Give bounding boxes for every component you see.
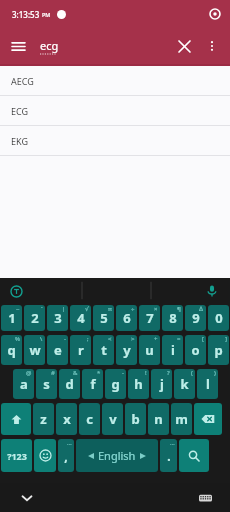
- button[interactable]: l: [197, 369, 218, 399]
- staticText: i: [171, 341, 175, 359]
- staticText: 1: [8, 309, 16, 327]
- staticText: u: [145, 341, 154, 359]
- button[interactable]: v: [102, 403, 123, 435]
- staticText: f: [90, 375, 96, 393]
- staticText: ECG: [11, 105, 29, 117]
- staticText: ÷: [131, 305, 135, 313]
- button[interactable]: j: [151, 369, 172, 399]
- staticText: ]: [225, 335, 227, 343]
- button[interactable]: [194, 403, 222, 435]
- staticText: -: [122, 369, 124, 377]
- button[interactable]: 1: [1, 305, 22, 331]
- staticText: 2: [31, 309, 39, 327]
- staticText: y: [123, 341, 131, 359]
- button[interactable]: a: [13, 369, 34, 399]
- staticText: r: [78, 341, 84, 359]
- staticText: =: [177, 335, 181, 343]
- button[interactable]: ,: [58, 439, 74, 472]
- button[interactable]: 6: [116, 305, 137, 331]
- button[interactable]: Switch keyboard: [194, 487, 216, 509]
- staticText: (: [191, 369, 193, 377]
- button[interactable]: Voice input: [202, 281, 222, 301]
- button[interactable]: x: [56, 403, 77, 435]
- staticText: ×: [154, 305, 158, 313]
- staticText: 9: [192, 309, 200, 327]
- staticText: ~: [16, 305, 20, 313]
- staticText: PM: [42, 11, 51, 18]
- staticText: p: [214, 341, 223, 359]
- staticText: 3:13:53: [12, 9, 40, 20]
- button[interactable]: Hide keyboard: [16, 487, 38, 509]
- button[interactable]: AECG: [0, 66, 230, 95]
- staticText: a: [20, 375, 28, 393]
- button[interactable]: 5: [93, 305, 114, 331]
- staticText: ): [214, 369, 216, 377]
- staticText: !: [145, 369, 147, 377]
- staticText: *: [97, 369, 101, 377]
- button[interactable]: b: [125, 403, 146, 435]
- staticText: #: [51, 369, 55, 377]
- staticText: ;: [87, 335, 89, 343]
- button[interactable]: u: [139, 335, 160, 365]
- staticText: 5: [100, 309, 108, 327]
- button[interactable]: 7: [139, 305, 160, 331]
- button[interactable]: Translate: [6, 281, 26, 301]
- button[interactable]: t: [93, 335, 114, 365]
- button[interactable]: s: [36, 369, 57, 399]
- staticText: n: [154, 410, 163, 428]
- staticText: j: [160, 375, 164, 393]
- button[interactable]: [179, 439, 209, 472]
- staticText: 7: [146, 309, 154, 327]
- button[interactable]: [1, 403, 31, 435]
- staticText: √: [85, 305, 89, 312]
- staticText: x: [63, 410, 71, 428]
- button[interactable]: 9: [185, 305, 206, 331]
- staticText: t: [101, 341, 107, 359]
- staticText: z: [40, 410, 47, 428]
- button[interactable]: y: [116, 335, 137, 365]
- button[interactable]: c: [79, 403, 100, 435]
- button[interactable]: n: [148, 403, 169, 435]
- button[interactable]: i: [162, 335, 183, 365]
- staticText: e: [54, 341, 62, 359]
- button[interactable]: r: [70, 335, 91, 365]
- staticText: h: [134, 375, 143, 393]
- button[interactable]: o: [185, 335, 206, 365]
- button[interactable]: m: [171, 403, 192, 435]
- button[interactable]: More options: [198, 32, 226, 60]
- button[interactable]: g: [105, 369, 126, 399]
- button[interactable]: Menu: [4, 32, 32, 60]
- button[interactable]: p: [208, 335, 229, 365]
- button[interactable]: 0: [208, 305, 229, 331]
- button[interactable]: .: [160, 439, 177, 472]
- button[interactable]: k: [174, 369, 195, 399]
- staticText: g: [111, 375, 120, 393]
- button[interactable]: [34, 439, 56, 472]
- staticText: π: [108, 305, 112, 313]
- button[interactable]: ECG: [0, 96, 230, 125]
- button[interactable]: z: [33, 403, 54, 435]
- staticText: %: [15, 335, 20, 343]
- staticText: …: [170, 439, 175, 447]
- button[interactable]: 4: [70, 305, 91, 331]
- button[interactable]: EKG: [0, 126, 230, 155]
- staticText: 4: [77, 309, 85, 327]
- button[interactable]: 3: [47, 305, 68, 331]
- button[interactable]: q: [1, 335, 22, 365]
- button[interactable]: h: [128, 369, 149, 399]
- staticText: 6: [123, 309, 131, 327]
- button[interactable]: e: [47, 335, 68, 365]
- button[interactable]: Clear search: [170, 32, 198, 60]
- staticText: 3: [54, 309, 62, 327]
- button[interactable]: w: [24, 335, 45, 365]
- button[interactable]: English: [76, 439, 158, 472]
- button[interactable]: 2: [24, 305, 45, 331]
- button[interactable]: f: [82, 369, 103, 399]
- button[interactable]: d: [59, 369, 80, 399]
- staticText: ?: [167, 369, 170, 377]
- button[interactable]: 8: [162, 305, 183, 331]
- button[interactable]: ?123: [1, 439, 32, 472]
- staticText: AECG: [11, 75, 34, 87]
- staticText: ?123: [7, 450, 27, 462]
- staticText: ecg: [40, 38, 59, 53]
